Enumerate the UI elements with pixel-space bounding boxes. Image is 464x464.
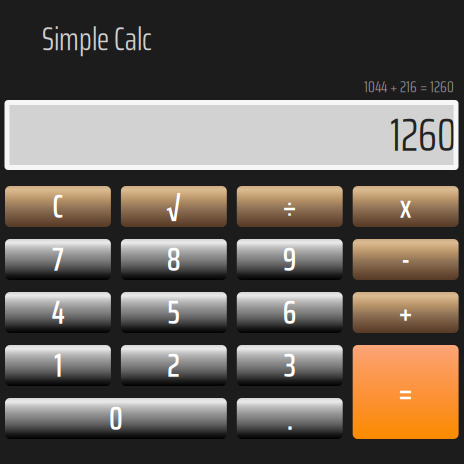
staticText: ÷ [282,181,297,232]
button[interactable]: 3 [237,345,343,386]
button[interactable]: ÷ [237,186,343,227]
button[interactable]: 4 [5,292,111,333]
button[interactable]: 6 [237,292,343,333]
button[interactable]: 0 [5,398,227,439]
staticText: + [398,287,413,338]
staticText: 9 [283,234,297,285]
button[interactable]: 5 [121,292,227,333]
staticText: = [398,367,413,417]
button[interactable]: C [5,186,111,227]
staticText: x [400,181,412,232]
button[interactable]: 1 [5,345,111,386]
button[interactable]: 9 [237,239,343,280]
staticText: C [52,181,63,232]
button[interactable]: 8 [121,239,227,280]
button[interactable]: 2 [121,345,227,386]
button[interactable]: √ [121,186,227,227]
staticText: 7 [52,234,64,285]
staticText: Simple Calc [42,14,152,64]
button[interactable]: . [237,398,343,439]
staticText: 6 [283,287,297,338]
button[interactable]: 7 [5,239,111,280]
staticText: 8 [167,234,181,285]
button[interactable]: + [353,292,459,333]
staticText: - [401,234,410,285]
staticText: 2 [167,340,180,391]
staticText: 1044 + 216 = 1260 [364,74,454,99]
staticText: 1260 [390,99,456,171]
button[interactable]: x [353,186,459,227]
staticText: 1 [54,340,62,391]
staticText: 5 [167,287,180,338]
staticText: 4 [51,287,64,338]
staticText: . [287,393,293,444]
button[interactable]: - [353,239,459,280]
staticText: 3 [284,340,296,391]
staticText: √ [166,181,181,232]
button[interactable]: = [353,345,459,439]
staticText: 0 [109,393,123,444]
